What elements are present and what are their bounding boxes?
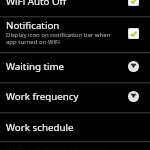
- staticText: Display icon on notification bar when: [6, 31, 111, 39]
- staticText: app turned on WiFi: [6, 38, 60, 46]
- staticText: Work frequency: [6, 90, 79, 103]
- button[interactable]: Work schedule: [0, 112, 150, 141]
- button[interactable]: Waiting time: [0, 52, 150, 82]
- staticText: Waiting time: [6, 60, 65, 73]
- button[interactable]: Work frequency: [0, 82, 150, 112]
- staticText: Work schedule: [6, 121, 74, 134]
- staticText: Notification: [6, 19, 60, 32]
- staticText: WiFi off while sleeping: [6, 143, 109, 150]
- staticText: WiFi Auto Off: [6, 0, 67, 8]
- button[interactable]: WiFi Auto Off: [0, 0, 150, 16]
- button[interactable]: Notification: [0, 16, 150, 52]
- other: Open list: [128, 61, 139, 72]
- button[interactable]: WiFi off while sleeping: [0, 141, 150, 150]
- other: Open list: [128, 91, 139, 102]
